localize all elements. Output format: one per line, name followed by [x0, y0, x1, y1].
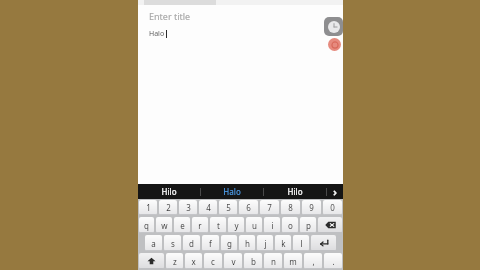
staticText: t	[217, 220, 220, 231]
staticText: ,	[312, 256, 315, 267]
button[interactable]: z	[166, 253, 183, 269]
staticText: Hilo	[287, 186, 303, 197]
button[interactable]: v	[224, 253, 242, 269]
button[interactable]: 2	[159, 200, 177, 215]
button[interactable]: f	[202, 235, 219, 251]
button[interactable]: Enter title	[149, 10, 343, 39]
button[interactable]: u	[246, 217, 262, 233]
staticText: l	[300, 238, 303, 249]
staticText: Enter title	[149, 10, 191, 22]
staticText: c	[211, 256, 215, 267]
staticText: j	[264, 238, 267, 249]
button[interactable]: 8	[281, 200, 300, 215]
staticText: 0	[330, 202, 335, 213]
staticText: h	[245, 238, 250, 249]
button[interactable]: 5	[219, 200, 237, 215]
staticText: q	[144, 220, 149, 231]
button[interactable]: .	[324, 253, 342, 269]
button[interactable]: m	[284, 253, 302, 269]
button[interactable]: k	[275, 235, 291, 251]
staticText: Halo	[223, 186, 241, 197]
staticText: 3	[186, 202, 191, 213]
button[interactable]: 7	[260, 200, 279, 215]
staticText: r	[198, 220, 202, 231]
staticText: 8	[288, 202, 293, 213]
staticText: n	[271, 256, 276, 267]
button[interactable]: s	[164, 235, 181, 251]
staticText: 9	[309, 202, 314, 213]
button[interactable]: b	[244, 253, 262, 269]
staticText: u	[252, 220, 257, 231]
button[interactable]: c	[204, 253, 222, 269]
button[interactable]: p	[300, 217, 316, 233]
staticText: Hilo	[161, 186, 177, 197]
staticText: 7	[267, 202, 272, 213]
button[interactable]: Hilo	[138, 184, 200, 199]
staticText: 1	[146, 202, 151, 213]
staticText: k	[281, 238, 286, 249]
button[interactable]: g	[221, 235, 237, 251]
staticText: 5	[226, 202, 231, 213]
staticText: m	[289, 256, 297, 267]
button[interactable]: t	[210, 217, 226, 233]
button[interactable]: y	[228, 217, 244, 233]
staticText: y	[234, 220, 239, 231]
staticText: 6	[246, 202, 251, 213]
button[interactable]: o	[282, 217, 298, 233]
button[interactable]: x	[185, 253, 202, 269]
staticText: p	[306, 220, 311, 231]
staticText: v	[231, 256, 236, 267]
button[interactable]: w	[156, 217, 172, 233]
staticText: g	[227, 238, 232, 249]
button[interactable]: 6	[239, 200, 258, 215]
staticText: b	[251, 256, 256, 267]
staticText: Halo	[149, 29, 165, 39]
staticText: ›	[333, 184, 338, 199]
staticText: x	[191, 256, 196, 267]
button[interactable]: e	[174, 217, 190, 233]
staticText: o	[288, 220, 293, 231]
button[interactable]: d	[183, 235, 200, 251]
button[interactable]: h	[239, 235, 255, 251]
staticText: a	[151, 238, 156, 249]
button[interactable]: 0	[323, 200, 342, 215]
button[interactable]: 1	[139, 200, 157, 215]
button[interactable]: n	[264, 253, 282, 269]
button[interactable]: ,	[304, 253, 322, 269]
button[interactable]: j	[257, 235, 273, 251]
button[interactable]: 3	[179, 200, 197, 215]
staticText: f	[209, 238, 212, 249]
button[interactable]: Backspace	[318, 217, 342, 233]
button[interactable]: 9	[302, 200, 321, 215]
button[interactable]: Floating assistant	[324, 17, 343, 36]
button[interactable]: Record	[328, 38, 341, 51]
button[interactable]: r	[192, 217, 208, 233]
staticText: w	[161, 220, 168, 231]
button[interactable]: More suggestions	[327, 184, 343, 199]
button[interactable]: i	[264, 217, 280, 233]
button[interactable]: 4	[199, 200, 217, 215]
button[interactable]: Hilo	[264, 184, 326, 199]
button[interactable]: a	[145, 235, 162, 251]
staticText: i	[271, 220, 274, 231]
button[interactable]: l	[293, 235, 309, 251]
staticText: 2	[166, 202, 171, 213]
staticText: .	[332, 256, 335, 267]
button[interactable]: Halo	[201, 184, 263, 199]
button[interactable]: q	[139, 217, 154, 233]
staticText: 4	[206, 202, 211, 213]
button[interactable]: Shift	[139, 253, 164, 269]
staticText: e	[180, 220, 185, 231]
staticText: d	[189, 238, 194, 249]
staticText: s	[171, 238, 175, 249]
button[interactable]: Enter	[311, 235, 336, 251]
staticText: z	[173, 256, 177, 267]
